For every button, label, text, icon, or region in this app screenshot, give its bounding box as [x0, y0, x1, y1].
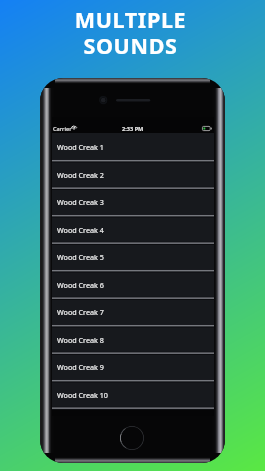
- button[interactable]: Wood Creak 7: [52, 298, 214, 326]
- button[interactable]: Wood Creak 10: [52, 381, 214, 409]
- staticText: Wood Creak 4: [57, 225, 104, 235]
- staticText: Wood Creak 5: [57, 252, 104, 262]
- staticText: Wood Creak 6: [57, 280, 104, 290]
- staticText: Wood Creak 10: [57, 390, 108, 400]
- staticText: Wood Creak 9: [57, 362, 104, 372]
- button[interactable]: Wood Creak 3: [52, 188, 214, 216]
- staticText: Wood Creak 7: [57, 307, 104, 317]
- staticText: SOUNDS: [0, 31, 263, 60]
- button[interactable]: Wood Creak 4: [52, 216, 214, 244]
- button[interactable]: Home: [120, 426, 144, 450]
- staticText: Wood Creak 3: [57, 197, 104, 207]
- staticText: Carrier: [53, 125, 72, 133]
- staticText: Wood Creak 2: [57, 170, 104, 180]
- button[interactable]: Wood Creak 1: [52, 133, 214, 161]
- staticText: MULTIPLE: [0, 5, 263, 34]
- button[interactable]: Wood Creak 9: [52, 353, 214, 381]
- button[interactable]: Wood Creak 6: [52, 271, 214, 299]
- staticText: Wood Creak 8: [57, 335, 104, 345]
- button[interactable]: Wood Creak 8: [52, 326, 214, 354]
- button[interactable]: Wood Creak 2: [52, 161, 214, 189]
- staticText: Wood Creak 1: [57, 142, 104, 152]
- button[interactable]: Wood Creak 5: [52, 243, 214, 271]
- staticText: 2:33 PM: [122, 125, 144, 133]
